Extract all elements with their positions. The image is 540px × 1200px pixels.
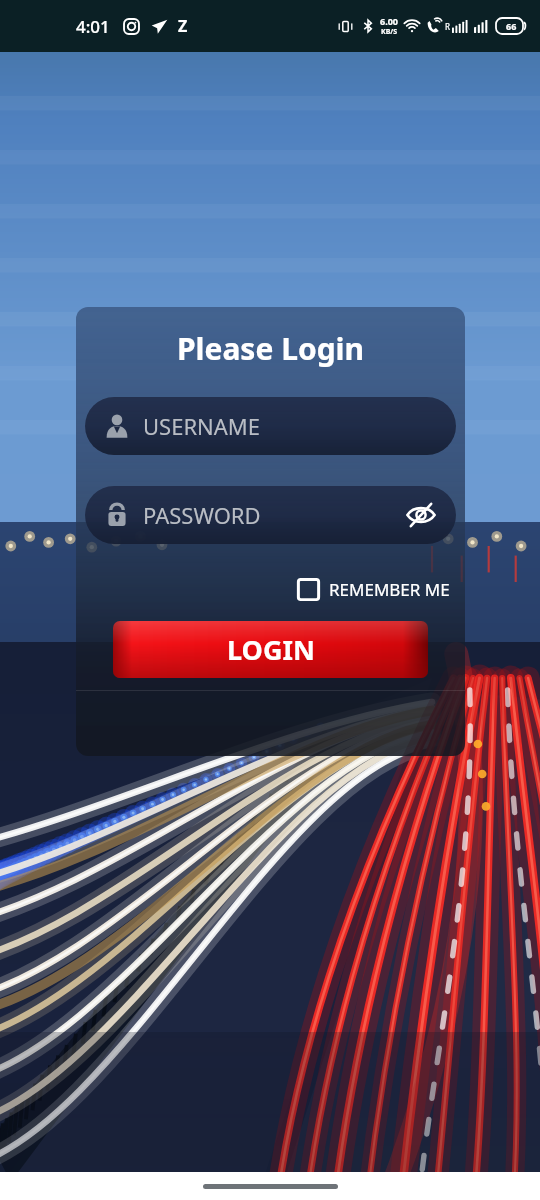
button[interactable]: PASSWORD bbox=[85, 486, 456, 544]
staticText: PASSWORD bbox=[143, 500, 261, 530]
staticText: REMEMBER ME bbox=[329, 578, 450, 601]
staticText: USERNAME bbox=[143, 411, 261, 441]
staticText: LOGIN bbox=[227, 631, 315, 668]
staticText: Please Login bbox=[76, 328, 465, 369]
staticText: 6.00 bbox=[380, 15, 398, 27]
staticText: 4:01 bbox=[76, 15, 110, 38]
button[interactable]: Show password bbox=[404, 498, 438, 532]
button[interactable]: REMEMBER ME bbox=[293, 574, 454, 605]
staticText: Z bbox=[178, 15, 188, 37]
button[interactable]: LOGIN bbox=[113, 621, 428, 678]
button[interactable]: USERNAME bbox=[85, 397, 456, 455]
staticText: R bbox=[445, 21, 450, 32]
staticText: KB/S bbox=[381, 27, 398, 37]
staticText: 66 bbox=[506, 20, 517, 32]
